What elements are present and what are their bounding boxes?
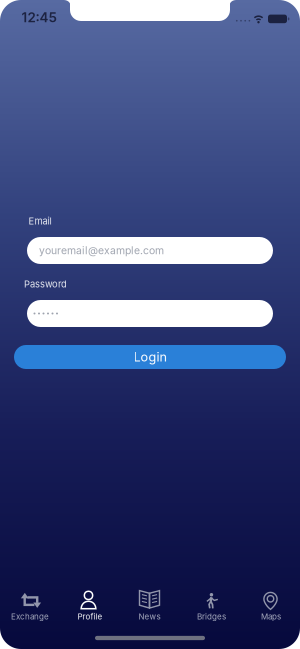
staticText: Password xyxy=(24,278,67,290)
staticText: youremail@example.com xyxy=(39,244,164,257)
button[interactable]: News xyxy=(120,582,178,628)
button[interactable]: Profile xyxy=(60,582,118,628)
button[interactable]: youremail@example.com xyxy=(27,237,273,264)
button[interactable]: Login xyxy=(14,345,286,369)
staticText: Login xyxy=(133,349,166,365)
staticText: Exchange xyxy=(11,612,49,621)
staticText: News xyxy=(138,612,160,621)
staticText: 12:45 xyxy=(21,9,56,25)
staticText: Email xyxy=(28,215,51,227)
button[interactable]: Bridges xyxy=(182,582,240,628)
button[interactable]: Exchange xyxy=(1,582,59,628)
staticText: Bridges xyxy=(197,612,226,621)
button[interactable] xyxy=(27,300,273,327)
staticText: Profile xyxy=(77,612,102,621)
staticText: Maps xyxy=(261,612,281,621)
button[interactable]: Maps xyxy=(241,582,299,628)
